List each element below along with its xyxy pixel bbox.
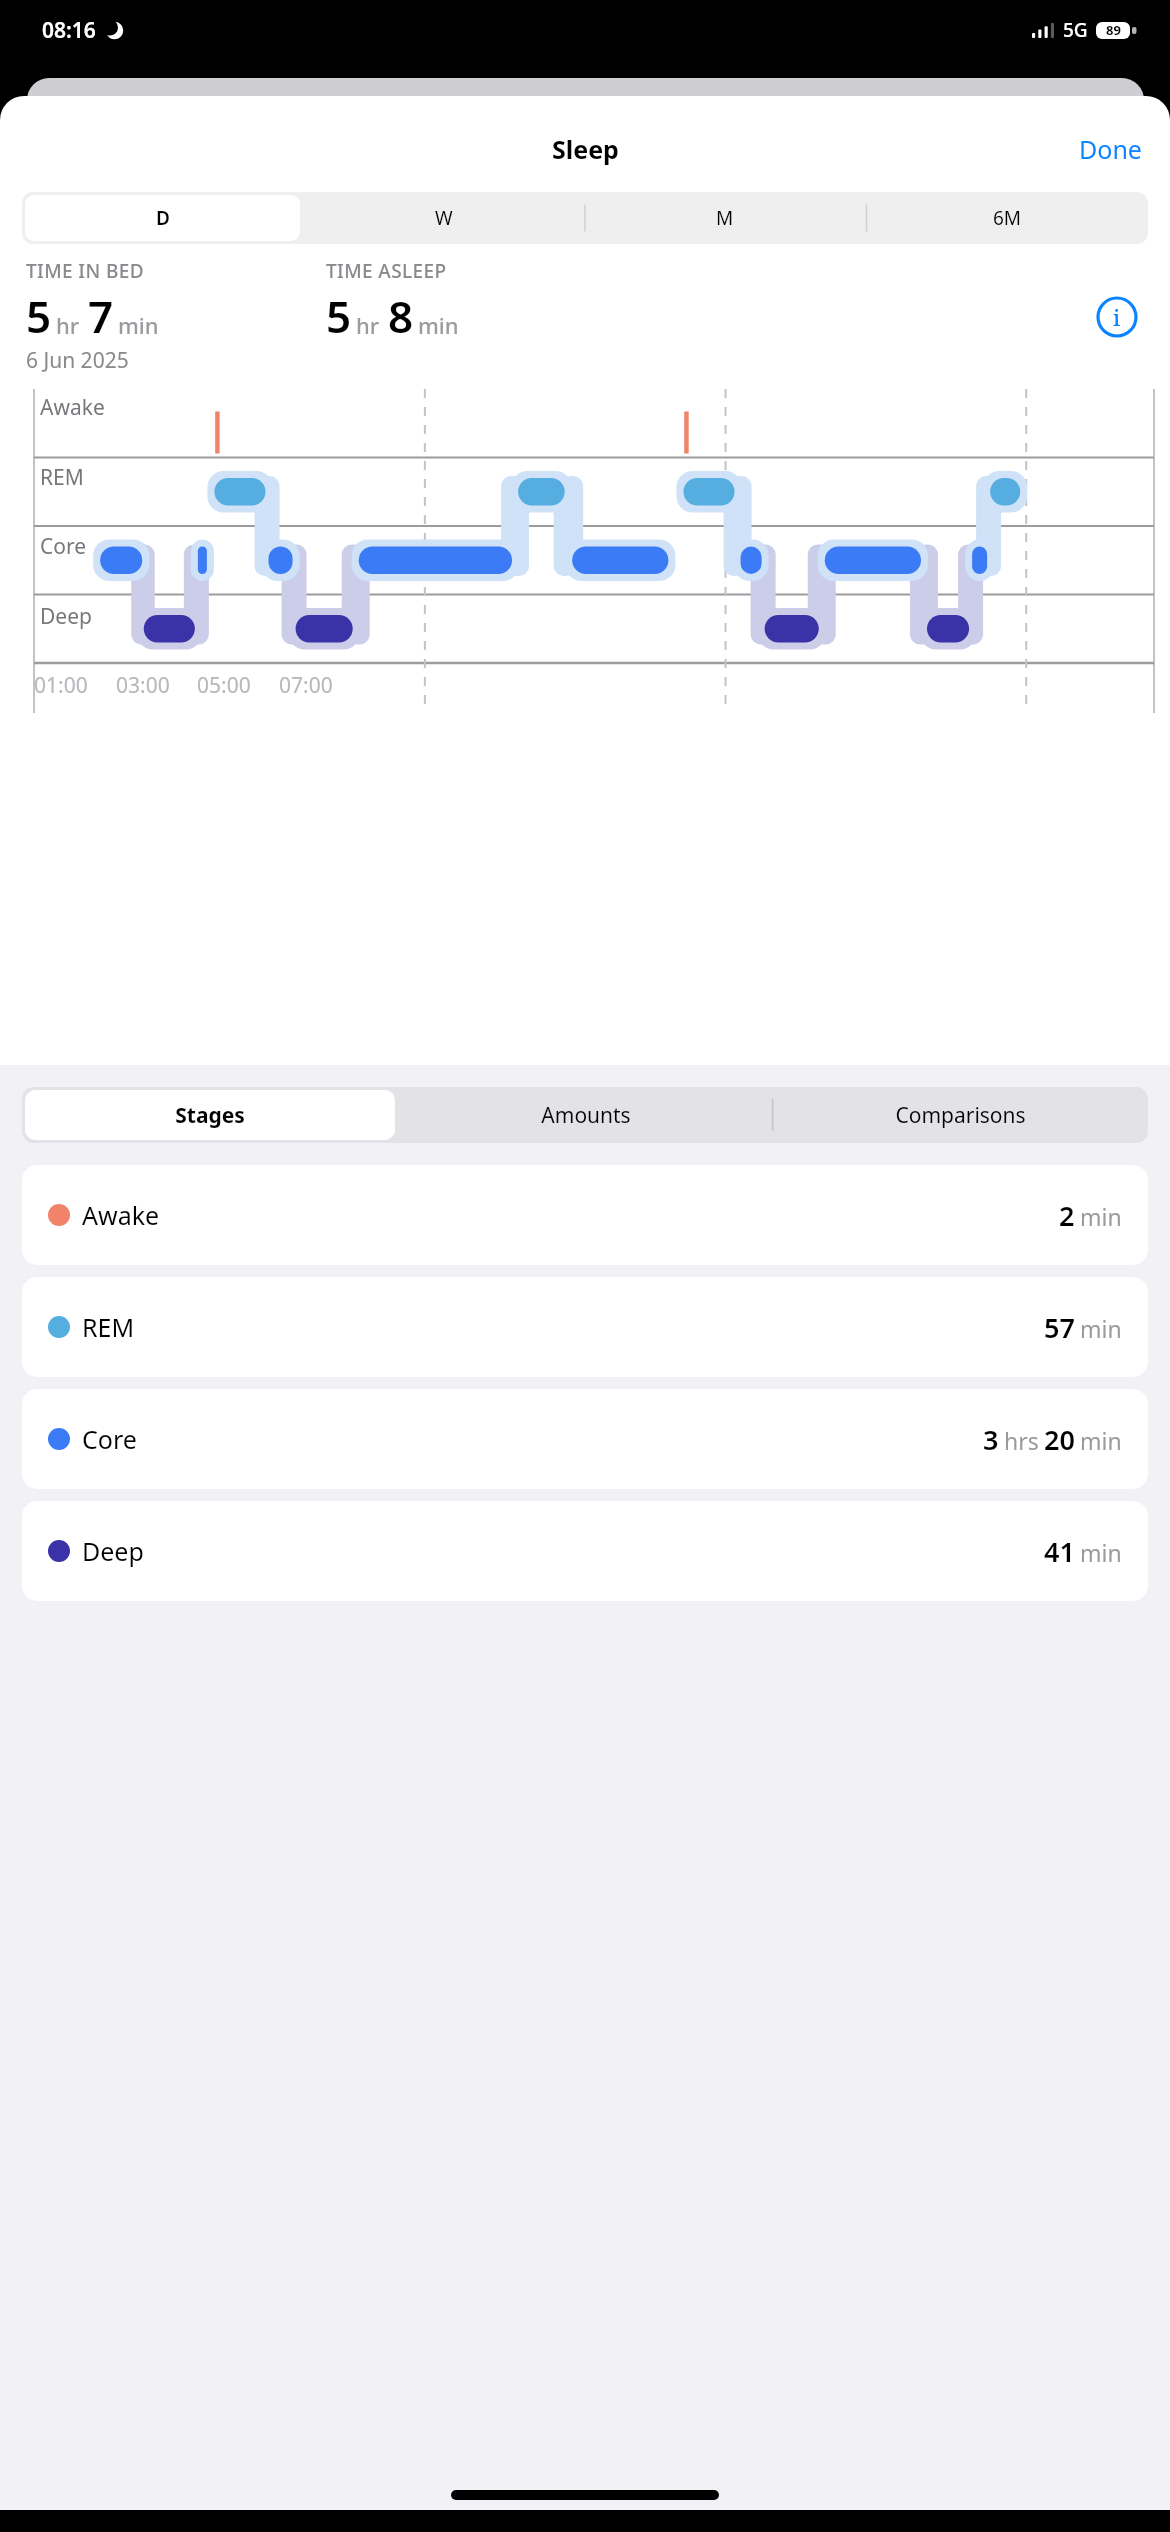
staticText: 57 [1044,1309,1075,1346]
staticText: hr [56,310,80,340]
button[interactable]: Deep [22,1501,1148,1601]
staticText: 7 [88,286,114,346]
staticText: 03:00 [116,671,170,700]
staticText: Deep [40,602,92,631]
staticText: Awake [40,393,105,422]
staticText: min [1080,1425,1122,1456]
staticText: hr [356,310,380,340]
staticText: min [118,310,159,340]
staticText: 05:00 [197,671,251,700]
staticText: 07:00 [279,671,333,700]
staticText: min [418,310,459,340]
staticText: Deep [82,1534,144,1568]
staticText: 08:16 [42,16,96,45]
staticText: Done [1079,132,1142,166]
button[interactable]: Stages [25,1090,395,1140]
staticText: 5 [326,286,352,346]
button[interactable]: Comparisons [776,1090,1145,1140]
staticText: REM [40,463,84,492]
staticText: 5G [1063,17,1088,43]
button[interactable]: REM [22,1277,1148,1377]
button[interactable]: Core [22,1389,1148,1489]
staticText: W [435,205,453,231]
staticText: Amounts [541,1101,631,1130]
staticText: 6M [993,205,1022,231]
staticText: 20 [1044,1421,1075,1458]
staticText: 3 [983,1421,999,1458]
staticText: min [1080,1313,1122,1344]
staticText: Core [40,532,87,561]
button[interactable]: D [25,195,300,241]
button[interactable]: M [587,195,863,241]
staticText: 41 [1044,1533,1075,1570]
button[interactable]: Awake [22,1165,1148,1265]
staticText: min [1080,1537,1122,1568]
button[interactable]: 6M [869,195,1145,241]
staticText: M [716,205,734,231]
staticText: Sleep [552,132,619,166]
button[interactable]: About sleep data [1094,294,1140,340]
staticText: 5 [26,286,52,346]
staticText: Stages [175,1101,245,1130]
staticText: 89 [1106,21,1121,39]
button[interactable]: Amounts [401,1090,770,1140]
staticText: 6 Jun 2025 [26,346,129,375]
staticText: hrs [1004,1425,1039,1456]
button[interactable]: W [306,195,581,241]
button[interactable]: Done [1069,126,1152,172]
staticText: Awake [82,1198,160,1232]
staticText: 2 [1059,1197,1075,1234]
staticText: REM [82,1310,135,1344]
staticText: D [156,205,170,231]
staticText: 8 [388,286,414,346]
staticText: TIME ASLEEP [326,258,447,284]
staticText: TIME IN BED [26,258,145,284]
staticText: Comparisons [895,1101,1026,1130]
staticText: Core [82,1422,137,1456]
staticText: 01:00 [34,671,88,700]
staticText: i [1113,302,1121,332]
staticText: min [1080,1201,1122,1232]
